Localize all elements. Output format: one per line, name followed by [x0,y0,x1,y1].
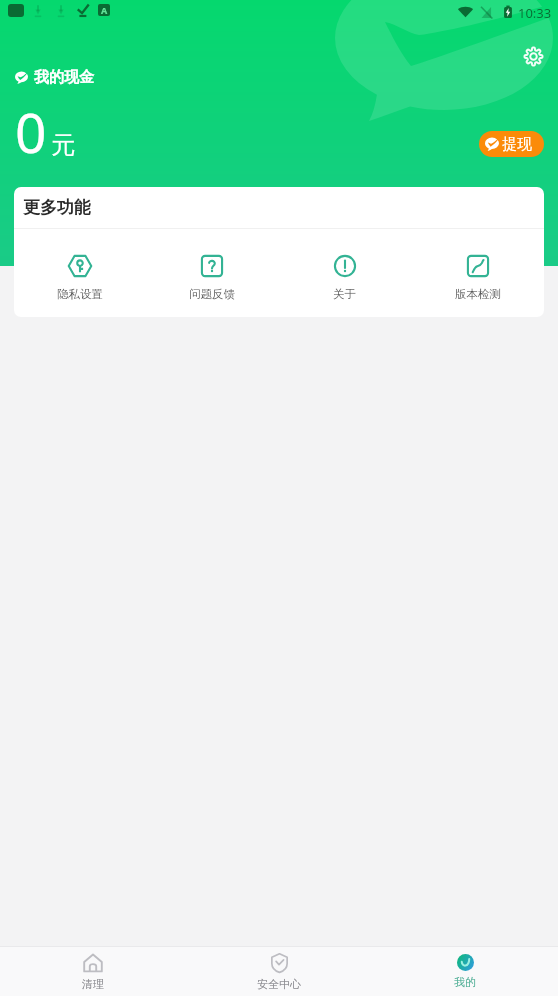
button[interactable]: 隐私设置 [14,237,146,317]
staticText: 我的现金 [34,68,94,87]
button[interactable]: 安全中心 [186,947,372,996]
staticText: 10:33 [518,4,552,22]
staticText: 安全中心 [257,977,301,991]
staticText: 更多功能 [23,197,91,218]
staticText: 版本检测 [455,287,501,301]
button[interactable]: 问题反馈 [146,237,278,317]
staticText: 提现 [502,135,532,154]
staticText: 隐私设置 [57,287,103,301]
button[interactable]: 清理 [0,947,186,996]
button[interactable]: 版本检测 [411,237,544,317]
button[interactable]: 提现 [479,131,544,157]
staticText: 元 [51,130,75,160]
button[interactable]: Settings [521,44,545,68]
button[interactable]: 我的 [372,947,558,996]
staticText: 问题反馈 [189,287,235,301]
staticText: 清理 [82,977,104,991]
button[interactable]: 关于 [278,237,411,317]
staticText: 关于 [333,287,356,301]
staticText: A [101,4,108,16]
staticText: 我的 [454,975,476,989]
staticText: 0 [15,94,47,169]
